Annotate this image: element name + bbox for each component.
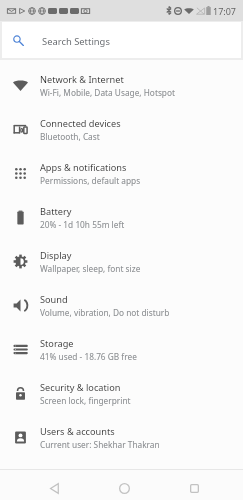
- button[interactable]: Users & accounts: [0, 415, 243, 459]
- staticText: Screen lock, fingerprint: [40, 395, 131, 406]
- button[interactable]: Display: [0, 239, 243, 283]
- staticText: Connected devices: [40, 117, 121, 130]
- staticText: Storage: [40, 337, 74, 350]
- button[interactable]: Search Settings: [2, 22, 241, 58]
- staticText: Network & Internet: [40, 73, 124, 86]
- button[interactable]: Home: [113, 477, 135, 499]
- staticText: 20% - 1d 10h 55m left: [40, 219, 125, 230]
- staticText: Security & location: [40, 381, 121, 394]
- staticText: Apps & notifications: [40, 161, 127, 174]
- staticText: Battery: [40, 205, 72, 218]
- button[interactable]: Back: [43, 477, 65, 499]
- button[interactable]: Battery: [0, 195, 243, 239]
- staticText: Display: [40, 249, 72, 262]
- staticText: Search Settings: [42, 35, 110, 48]
- staticText: Permissions, default apps: [40, 175, 141, 186]
- button[interactable]: Recent apps: [183, 477, 205, 499]
- staticText: Wallpaper, sleep, font size: [40, 263, 141, 274]
- button[interactable]: Security & location: [0, 371, 243, 415]
- staticText: 41% used - 18.76 GB free: [40, 351, 137, 362]
- staticText: Wi-Fi, Mobile, Data Usage, Hotspot: [40, 87, 175, 98]
- button[interactable]: Apps & notifications: [0, 151, 243, 195]
- button[interactable]: Connected devices: [0, 107, 243, 151]
- button[interactable]: Network & Internet: [0, 63, 243, 107]
- button[interactable]: Sound: [0, 283, 243, 327]
- staticText: Sound: [40, 293, 68, 306]
- staticText: Bluetooth, Cast: [40, 131, 100, 142]
- staticText: Current user: Shekhar Thakran: [40, 439, 160, 450]
- button[interactable]: Storage: [0, 327, 243, 371]
- staticText: Users & accounts: [40, 425, 115, 438]
- staticText: Volume, vibration, Do not disturb: [40, 307, 170, 318]
- staticText: 17:07: [213, 5, 237, 17]
